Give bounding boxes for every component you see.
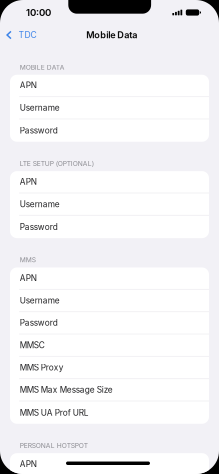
button[interactable]: APN [10,171,209,193]
button[interactable]: MMS UA Prof URL [10,401,209,424]
staticText: LTE SETUP (OPTIONAL) [20,160,94,168]
button[interactable]: Username [10,290,209,312]
staticText: PERSONAL HOTSPOT [20,442,88,450]
button[interactable]: MMS Max Message Size [10,379,209,401]
button[interactable]: APN [10,453,209,474]
staticText: MMS Proxy [20,362,64,372]
staticText: Password [20,222,58,232]
staticText: APN [20,80,37,90]
staticText: MOBILE DATA [20,63,65,71]
staticText: Username [20,295,60,305]
button[interactable]: Password [10,119,209,142]
button[interactable]: MMS Proxy [10,357,209,379]
staticText: MMSC [20,340,45,350]
button[interactable]: Username [10,97,209,119]
staticText: MMS UA Prof URL [20,408,89,418]
button[interactable]: APN [10,267,209,290]
button[interactable]: TDC [0,27,39,43]
staticText: Username [20,199,60,209]
button[interactable]: Password [10,312,209,334]
staticText: APN [20,177,37,187]
staticText: Password [20,126,58,136]
staticText: TDC [18,30,36,40]
staticText: Password [20,318,58,328]
staticText: Username [20,103,60,113]
button[interactable]: Username [10,193,209,216]
staticText: MMS Max Message Size [20,385,113,395]
staticText: APN [20,459,37,469]
staticText: 10:00 [26,7,51,18]
button[interactable]: APN [10,75,209,97]
staticText: APN [20,273,37,283]
staticText: Mobile Data [86,29,137,40]
staticText: MMS [20,256,36,264]
button[interactable]: Password [10,216,209,238]
button[interactable]: MMSC [10,334,209,357]
